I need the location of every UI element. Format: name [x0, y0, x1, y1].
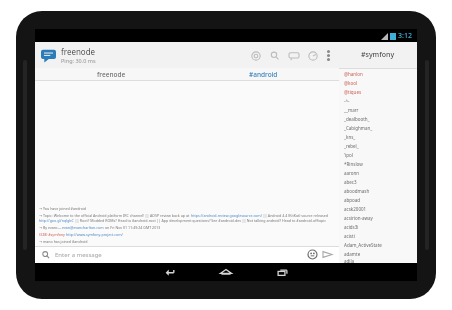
button[interactable]: acisti [339, 231, 417, 240]
staticText: acsk20001 [344, 206, 367, 212]
staticText: __marr [344, 107, 359, 113]
button[interactable]: @kool [339, 78, 417, 87]
staticText: _rebel_ [344, 143, 359, 149]
staticText: → mano has joined #android [39, 239, 88, 244]
button[interactable]: 'ipol [339, 150, 417, 159]
staticText: (328) #symfony [39, 232, 66, 237]
button[interactable]: Settings [303, 46, 322, 65]
button[interactable]: _kns_ [339, 132, 417, 141]
button[interactable]: Recent apps [254, 263, 310, 281]
staticText: 'ipol [344, 152, 353, 158]
staticText: on Fri Nov 01 11:49:24 GMT 2013 [104, 225, 161, 230]
staticText: acsirion-away [344, 215, 373, 221]
button[interactable]: adila [339, 258, 417, 263]
staticText: || Root? Modded ROMs? Head to #android-r… [74, 218, 326, 223]
button[interactable]: abec3 [339, 177, 417, 186]
button[interactable]: adamte [339, 249, 417, 258]
button[interactable]: Add channel [246, 46, 265, 65]
staticText: → You have joined #android [39, 206, 87, 211]
button[interactable]: Search [265, 46, 284, 65]
button[interactable]: acsk20001 [339, 204, 417, 213]
staticText: adila [344, 258, 355, 263]
staticText: evan@evancharlton.com [62, 225, 104, 230]
staticText: http://www.symfony-project.com/ [66, 232, 123, 237]
staticText: abec3 [344, 179, 357, 185]
staticText: acisti [344, 233, 355, 239]
button[interactable]: *Rinslow [339, 159, 417, 168]
button[interactable]: Search [40, 249, 52, 261]
button[interactable]: Enter a message [55, 251, 306, 259]
button[interactable]: Send [321, 248, 334, 261]
button[interactable]: Back [142, 263, 198, 281]
staticText: @hanlon [344, 71, 363, 77]
button[interactable]: _rebel_ [339, 141, 417, 150]
staticText: abpoad [344, 197, 361, 203]
button[interactable]: freenode [35, 68, 187, 81]
staticText: 3:12 [398, 31, 412, 41]
button[interactable]: Server [40, 47, 57, 64]
button[interactable]: aboodmash [339, 186, 417, 195]
staticText: freenode [61, 46, 96, 57]
button[interactable]: More options [322, 45, 334, 65]
button[interactable]: @tiques [339, 87, 417, 96]
button[interactable]: -^- [339, 96, 417, 105]
staticText: Enter a message [55, 251, 102, 259]
button[interactable]: acids3i [339, 222, 417, 231]
staticText: #symfony [361, 50, 395, 60]
staticText: _Cabighman_ [344, 125, 373, 131]
button[interactable]: Home [198, 263, 254, 281]
button[interactable]: acsirion-away [339, 213, 417, 222]
button[interactable]: abpoad [339, 195, 417, 204]
staticText: -^- [344, 98, 350, 104]
button[interactable]: __marr [339, 105, 417, 114]
staticText: aboodmash [344, 188, 370, 194]
staticText: _dealbooth_ [344, 116, 370, 122]
staticText: → By evanc— [39, 225, 62, 230]
button[interactable]: Adam_ActiveState [339, 240, 417, 249]
staticText: https://android-review.googlesource.com/ [191, 213, 262, 218]
staticText: → Topic: Welcome to the official Android… [39, 213, 191, 218]
staticText: freenode [97, 70, 126, 79]
staticText: #android [249, 70, 278, 79]
button[interactable]: _Cabighman_ [339, 123, 417, 132]
button[interactable]: _dealbooth_ [339, 114, 417, 123]
button[interactable]: aaronn [339, 168, 417, 177]
staticText: Adam_ActiveState [344, 242, 382, 248]
button[interactable]: @hanlon [339, 69, 417, 78]
staticText: aaronn [344, 170, 360, 176]
staticText: @tiques [344, 89, 362, 95]
button[interactable]: Emoji [306, 248, 319, 261]
staticText: _kns_ [344, 134, 356, 140]
staticText: || Android 4.4 (KitKat) source released [262, 213, 329, 218]
staticText: @kool [344, 80, 358, 86]
staticText: *Rinslow [344, 161, 363, 167]
staticText: acids3i [344, 224, 359, 230]
staticText: http://goo.gl/nqlgbC [39, 218, 74, 223]
staticText: adamte [344, 251, 361, 257]
button[interactable]: Messages [284, 46, 303, 65]
staticText: Ping: 30.0 ms [61, 57, 96, 64]
button[interactable]: #android [187, 68, 339, 81]
